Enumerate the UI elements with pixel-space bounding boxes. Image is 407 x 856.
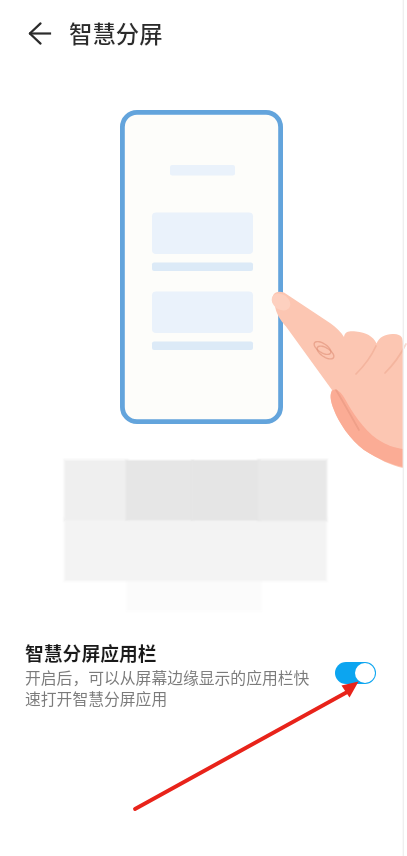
staticText: 开启后，可以从屏幕边缘显示的应用栏快速打开智慧分屏应用: [25, 666, 317, 709]
button[interactable]: 智慧分屏应用栏: [0, 636, 407, 712]
button[interactable]: 智慧分屏应用栏开关: [335, 662, 376, 684]
button[interactable]: 返回: [15, 9, 63, 57]
staticText: 智慧分屏: [69, 16, 163, 50]
staticText: 智慧分屏应用栏: [25, 639, 157, 666]
